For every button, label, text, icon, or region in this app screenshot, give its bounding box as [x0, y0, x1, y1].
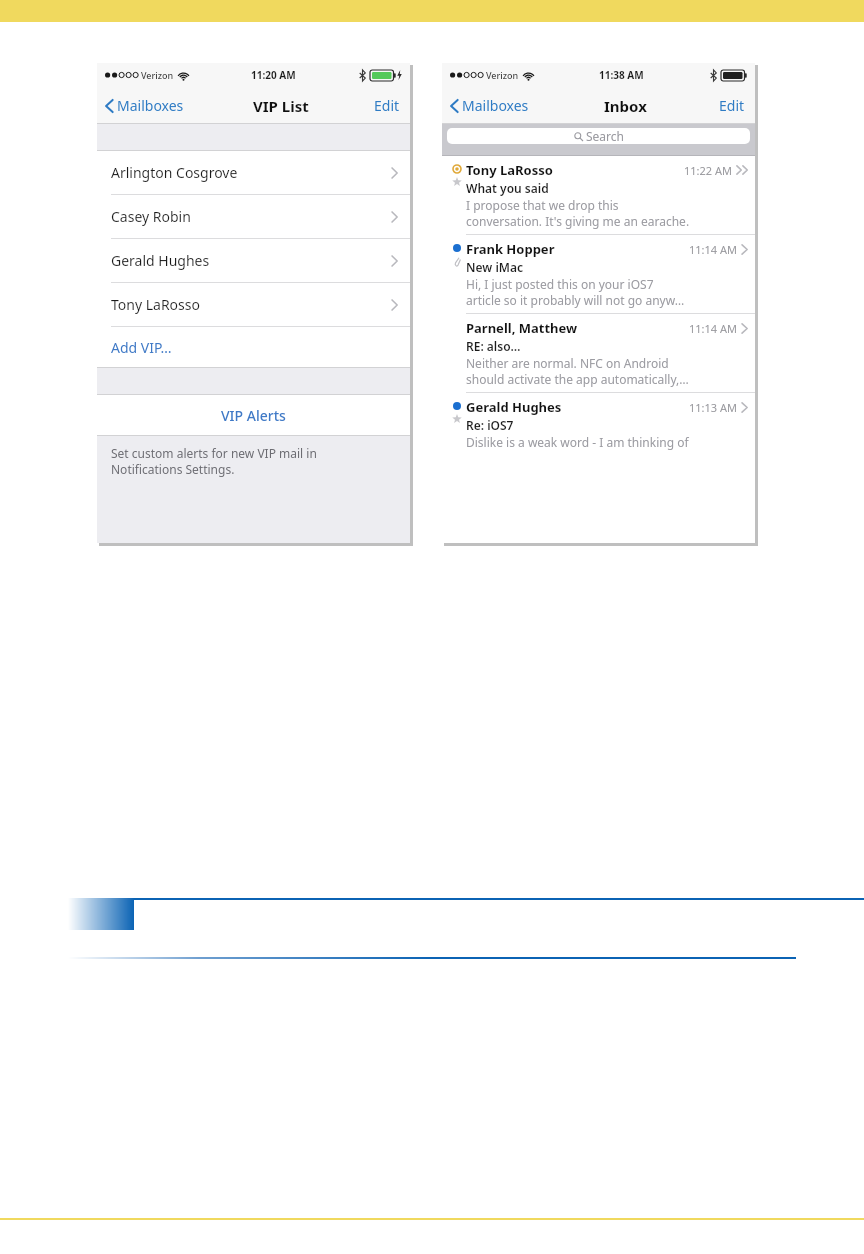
staticText: Gerald Hughes: [111, 251, 210, 270]
staticText: VIP List: [253, 96, 309, 116]
staticText: Set custom alerts for new VIP mail in: [111, 445, 317, 461]
staticText: Parnell, Matthew: [466, 319, 578, 337]
staticText: New iMac: [466, 259, 523, 275]
button[interactable]: Search: [447, 128, 750, 144]
staticText: Neither are normal. NFC on Android: [466, 355, 669, 371]
staticText: Edit: [719, 96, 745, 115]
staticText: 11:14 AM: [689, 242, 737, 257]
staticText: Search: [586, 128, 624, 144]
staticText: 11:13 AM: [689, 400, 737, 415]
staticText: 11:14 AM: [689, 321, 737, 336]
button[interactable]: Edit: [717, 96, 747, 115]
button[interactable]: Tony LaRosso: [442, 156, 755, 234]
button[interactable]: Gerald Hughes: [97, 239, 410, 282]
staticText: Mailboxes: [117, 96, 184, 115]
button[interactable]: VIP Alerts: [97, 395, 410, 435]
button[interactable]: Frank Hopper: [442, 235, 755, 313]
staticText: Verizon: [486, 69, 519, 81]
staticText: Verizon: [141, 69, 174, 81]
staticText: 11:38 AM: [599, 68, 644, 82]
staticText: Add VIP…: [111, 338, 172, 357]
staticText: Inbox: [604, 96, 647, 116]
button[interactable]: Arlington Cosgrove: [97, 151, 410, 194]
staticText: What you said: [466, 180, 549, 196]
staticText: RE: also…: [466, 338, 521, 354]
staticText: Frank Hopper: [466, 240, 555, 258]
staticText: Mailboxes: [462, 96, 529, 115]
staticText: Hi, I just posted this on your iOS7: [466, 276, 654, 292]
staticText: Arlington Cosgrove: [111, 163, 238, 182]
staticText: Edit: [374, 96, 400, 115]
button[interactable]: Casey Robin: [97, 195, 410, 238]
staticText: Gerald Hughes: [466, 398, 562, 416]
staticText: article so it probably will not go anyw…: [466, 292, 685, 308]
button[interactable]: Edit: [372, 96, 402, 115]
button[interactable]: Gerald Hughes: [442, 393, 755, 455]
button[interactable]: Mailboxes: [105, 96, 190, 115]
staticText: 11:22 AM: [684, 163, 732, 178]
button[interactable]: Tony LaRosso: [97, 283, 410, 326]
button[interactable]: Parnell, Matthew: [442, 314, 755, 392]
staticText: Casey Robin: [111, 207, 191, 226]
staticText: VIP Alerts: [221, 406, 286, 425]
staticText: conversation. It's giving me an earache.: [466, 213, 690, 229]
staticText: 11:20 AM: [251, 68, 296, 82]
staticText: Notifications Settings.: [111, 461, 235, 477]
button[interactable]: Mailboxes: [450, 96, 535, 115]
staticText: Tony LaRosso: [466, 161, 553, 179]
staticText: Re: iOS7: [466, 417, 514, 433]
staticText: should activate the app automatically,…: [466, 371, 689, 387]
button[interactable]: Add VIP…: [97, 327, 410, 367]
staticText: Dislike is a weak word - I am thinking o…: [466, 434, 689, 450]
staticText: I propose that we drop this: [466, 197, 619, 213]
staticText: Tony LaRosso: [111, 295, 200, 314]
